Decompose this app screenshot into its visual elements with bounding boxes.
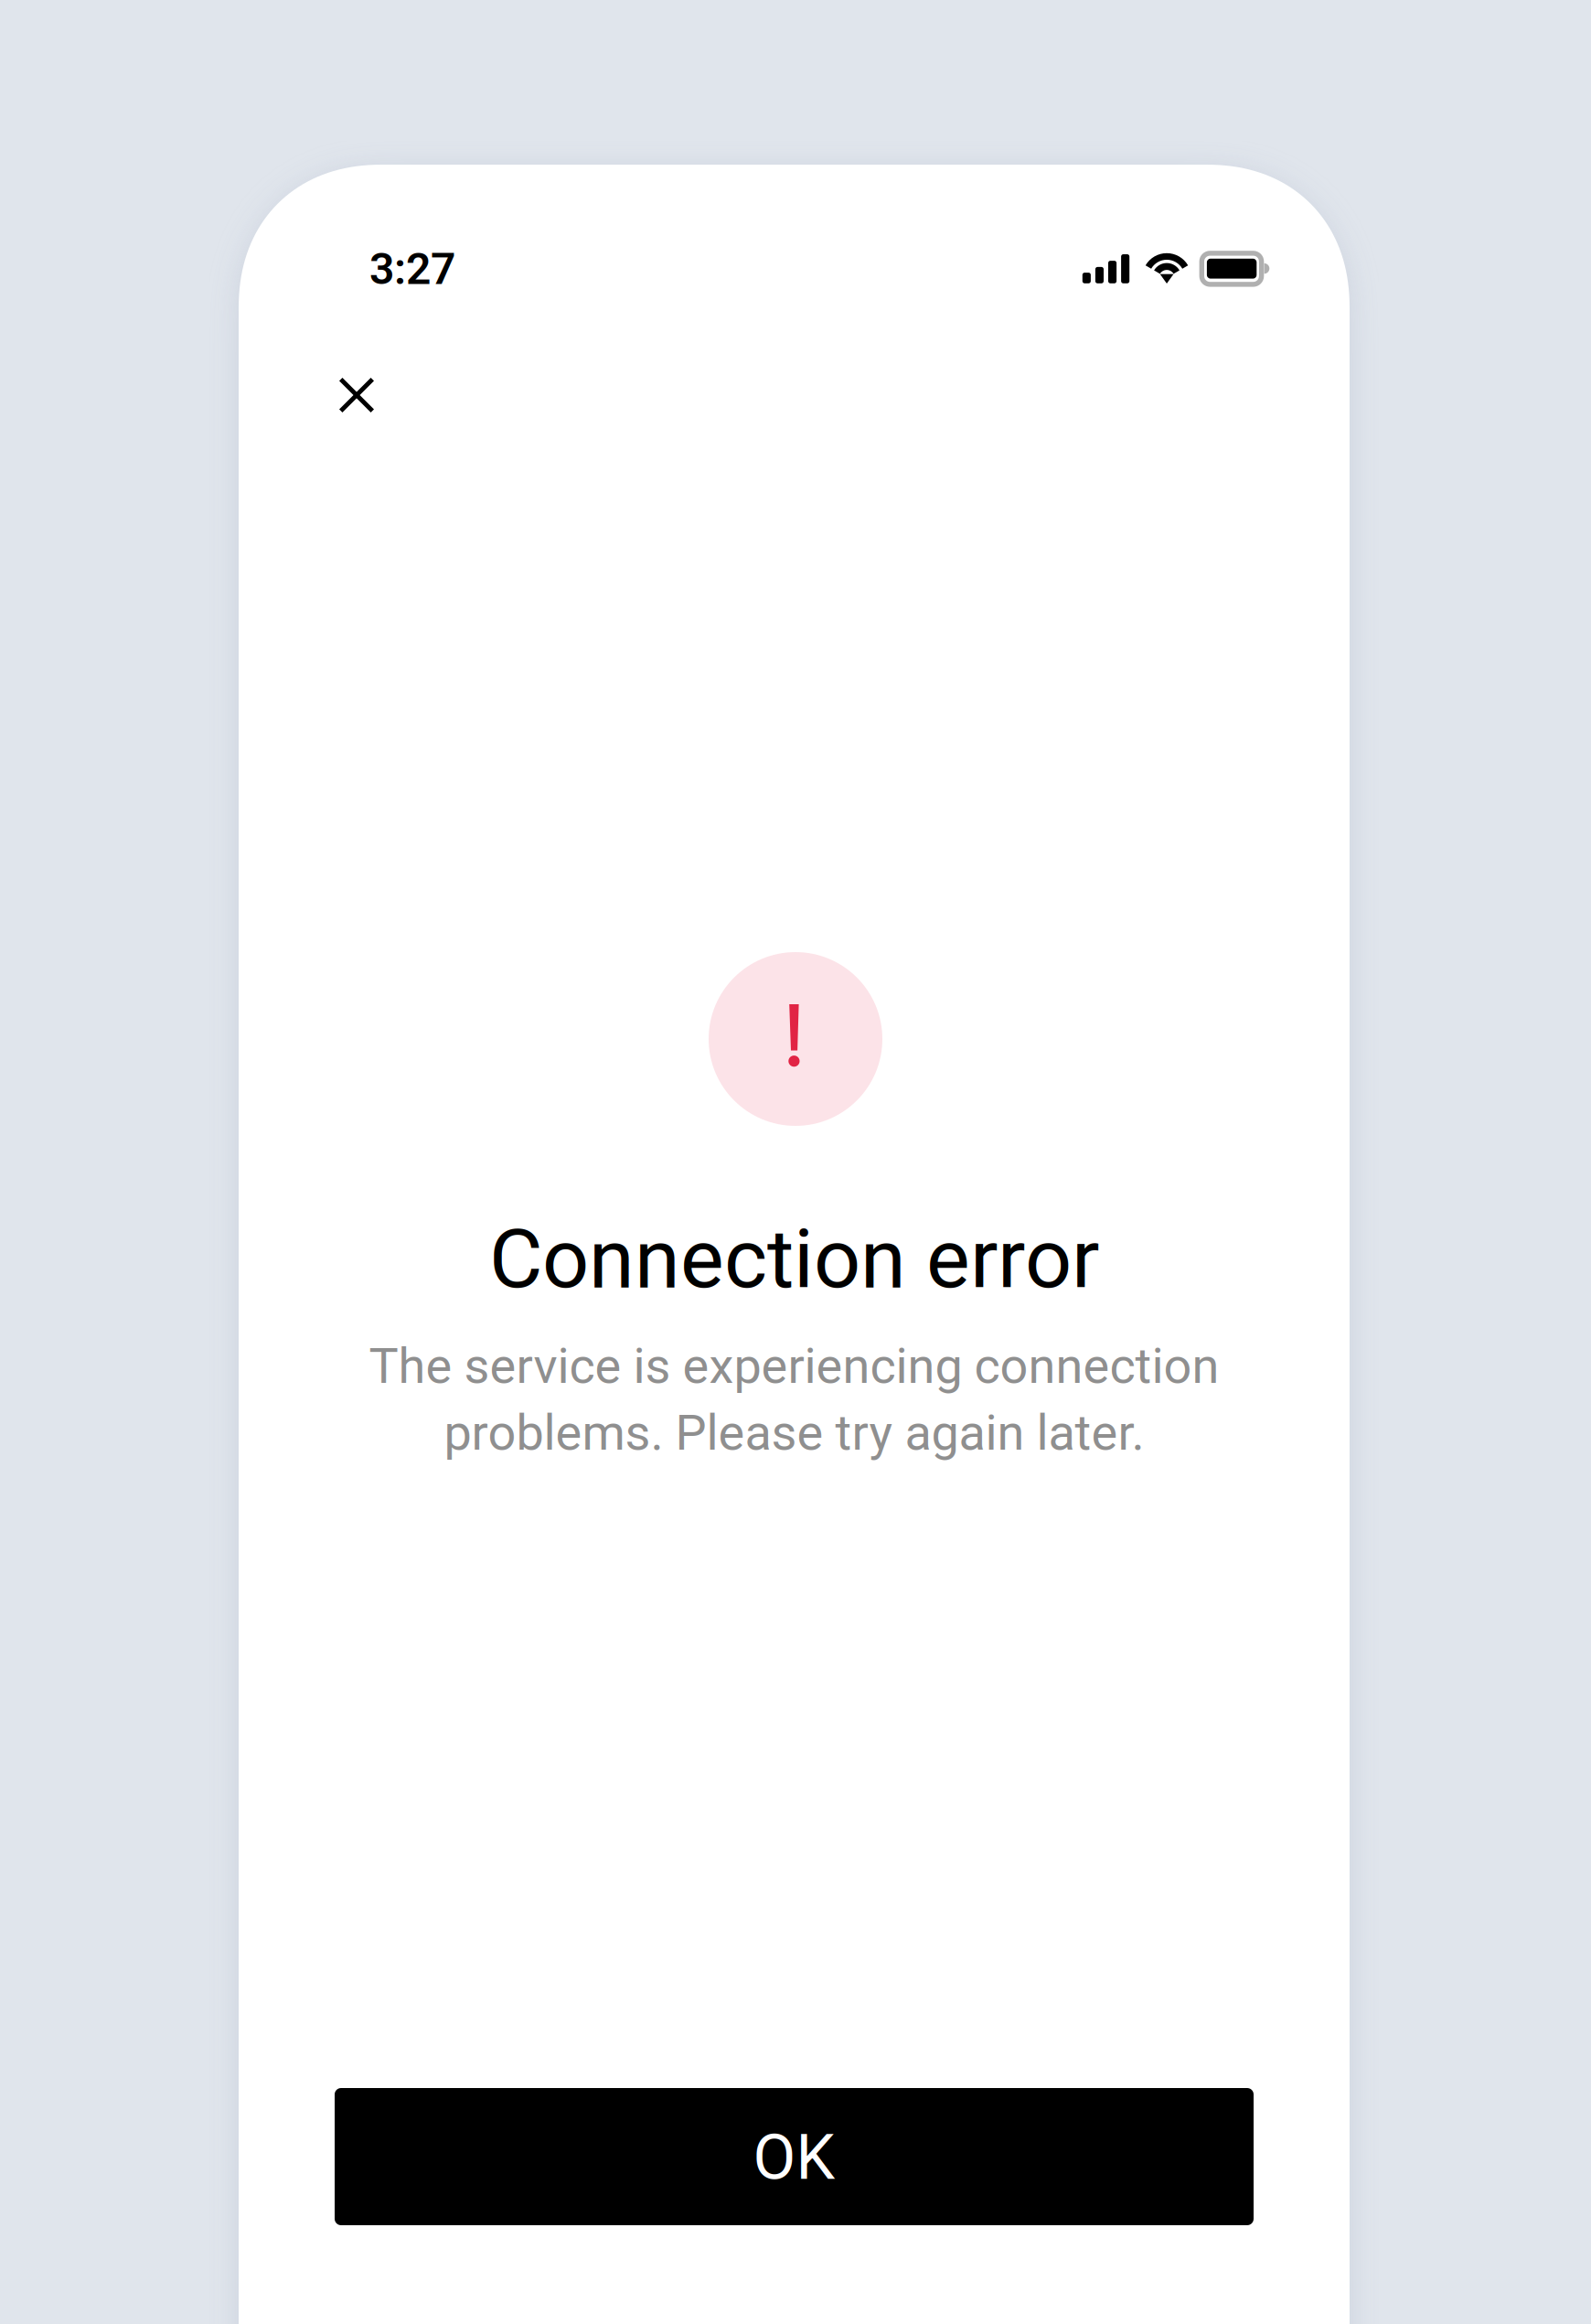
staticText: Connection error — [489, 1211, 1099, 1307]
staticText: The service is experiencing connection — [369, 1337, 1219, 1395]
staticText: 3:27 — [369, 243, 455, 295]
button[interactable]: Close — [314, 352, 400, 438]
staticText: problems. Please try again later. — [444, 1404, 1144, 1462]
staticText: OK — [753, 2121, 835, 2194]
button[interactable]: OK — [335, 2088, 1254, 2225]
